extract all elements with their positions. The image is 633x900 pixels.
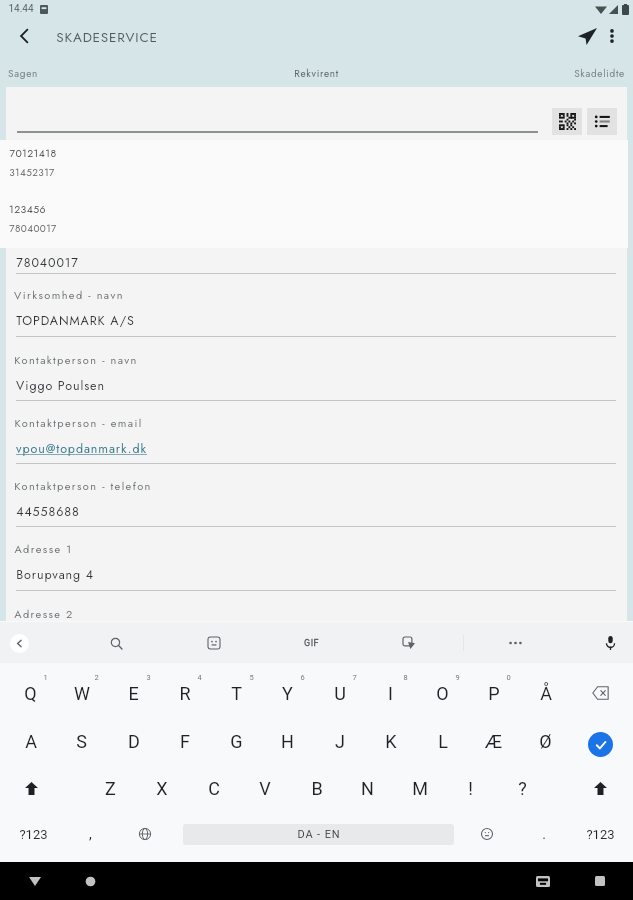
button[interactable]: Y [262, 670, 313, 716]
staticText: 1 [43, 673, 48, 682]
staticText: 9 [455, 673, 460, 682]
button[interactable]: N [342, 765, 393, 811]
button[interactable]: 78040017 [6, 250, 627, 276]
button[interactable]: 70121418 [0, 140, 628, 188]
staticText: 7 [352, 673, 357, 682]
button[interactable]: Å [520, 670, 571, 716]
staticText: 44558688 [16, 503, 80, 521]
button[interactable]: Q [5, 670, 56, 716]
button[interactable]: Borupvang 4 [6, 562, 627, 588]
button[interactable]: Symbols [7, 812, 59, 856]
button[interactable]: Backspace [575, 670, 625, 716]
staticText: N [361, 778, 374, 799]
button[interactable]: Z [85, 765, 136, 811]
staticText: 123456 [9, 202, 46, 217]
button[interactable]: 44558688 [6, 499, 627, 525]
staticText: 5 [249, 673, 254, 682]
button[interactable]: Back [5, 16, 45, 56]
button[interactable]: G [211, 718, 262, 764]
button[interactable]: Emoji [462, 812, 512, 856]
staticText: Adresse 1 [14, 541, 73, 557]
button[interactable]: vpou@topdanmark.dk [6, 436, 627, 462]
staticText: Kontaktperson - navn [14, 352, 138, 368]
button[interactable]: J [314, 718, 365, 764]
button[interactable]: Switch keyboard [527, 865, 559, 897]
button[interactable]: W [56, 670, 107, 716]
button[interactable]: More [500, 628, 530, 658]
staticText: Y [282, 683, 293, 704]
staticText: O [436, 683, 449, 704]
staticText: G [230, 731, 243, 752]
button[interactable]: Ø [520, 718, 571, 764]
staticText: Borupvang 4 [16, 566, 94, 584]
button[interactable]: ! [445, 765, 496, 811]
button[interactable]: More options [598, 19, 626, 53]
staticText: Sagen [8, 66, 38, 80]
staticText: W [74, 683, 90, 704]
button[interactable]: Skadelidte [503, 63, 633, 83]
button[interactable]: Recent apps [584, 865, 616, 897]
button[interactable]: A [5, 718, 56, 764]
button[interactable]: Voice input [595, 628, 625, 658]
button[interactable]: V [239, 765, 290, 811]
button[interactable]: I [365, 670, 416, 716]
button[interactable]: R [159, 670, 210, 716]
button[interactable]: Change language [120, 812, 170, 856]
button[interactable]: D [108, 718, 159, 764]
button[interactable]: Comma [65, 812, 115, 856]
button[interactable]: Rekvirent [251, 63, 381, 83]
button[interactable]: K [365, 718, 416, 764]
staticText: 8 [403, 673, 408, 682]
button[interactable]: Enter [588, 732, 613, 757]
button[interactable]: Shift [574, 765, 626, 811]
button[interactable]: Send [570, 19, 604, 53]
button[interactable]: Scan QR code [552, 108, 582, 135]
staticText: L [438, 731, 448, 752]
button[interactable]: List view [587, 108, 617, 135]
button[interactable]: Period [519, 812, 569, 856]
button[interactable]: X [136, 765, 187, 811]
button[interactable]: Sagen [0, 63, 130, 83]
button[interactable]: 123456 [0, 196, 628, 244]
button[interactable]: S [56, 718, 107, 764]
staticText: A [25, 731, 37, 752]
button[interactable]: P [468, 670, 519, 716]
button[interactable]: Shift [5, 765, 57, 811]
button[interactable]: T [211, 670, 262, 716]
button[interactable]: Back [10, 634, 29, 653]
button[interactable]: O [417, 670, 468, 716]
button[interactable]: GIF [293, 628, 329, 658]
button[interactable]: ? [497, 765, 548, 811]
button[interactable]: E [108, 670, 159, 716]
button[interactable]: Symbols [574, 812, 626, 856]
button[interactable]: Search [101, 628, 131, 658]
button[interactable]: Hide keyboard [19, 865, 51, 897]
staticText: X [156, 778, 168, 799]
button[interactable]: H [262, 718, 313, 764]
staticText: T [231, 683, 242, 704]
staticText: ? [518, 778, 527, 799]
button[interactable]: Stickers [394, 628, 424, 658]
button[interactable]: U [314, 670, 365, 716]
button[interactable]: Viggo Poulsen [6, 373, 627, 399]
staticText: 31452317 [9, 165, 55, 179]
staticText: R [179, 683, 191, 704]
button[interactable]: C [188, 765, 239, 811]
button[interactable]: DA - EN [183, 824, 454, 845]
button[interactable]: F [159, 718, 210, 764]
staticText: Adresse 2 [14, 606, 74, 622]
button[interactable]: TOPDANMARK A/S [6, 308, 627, 334]
staticText: K [385, 731, 397, 752]
staticText: J [335, 731, 345, 752]
staticText: 6 [300, 673, 305, 682]
button[interactable]: Home [74, 865, 106, 897]
button[interactable]: L [417, 718, 468, 764]
staticText: H [281, 731, 294, 752]
staticText: 14.44 [8, 3, 34, 15]
button[interactable]: Emoji [199, 628, 229, 658]
button[interactable]: Æ [468, 718, 519, 764]
staticText: Z [105, 778, 116, 799]
staticText: Kontaktperson - telefon [14, 478, 152, 494]
button[interactable]: M [394, 765, 445, 811]
button[interactable]: B [291, 765, 342, 811]
